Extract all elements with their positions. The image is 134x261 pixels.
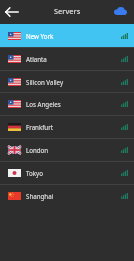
staticText: Silicon Valley xyxy=(26,78,64,86)
button[interactable]: Los Angeles xyxy=(0,92,134,115)
staticText: Los Angeles xyxy=(26,100,61,108)
button[interactable]: London xyxy=(0,138,134,161)
staticText: Frankfurt xyxy=(26,123,53,131)
button[interactable]: Atlanta xyxy=(0,47,134,70)
staticText: Shanghai xyxy=(26,192,54,200)
staticText: Atlanta xyxy=(26,55,47,63)
button[interactable]: New York xyxy=(0,24,134,47)
button[interactable]: Shanghai xyxy=(0,184,134,207)
staticText: New York xyxy=(26,32,54,40)
button[interactable]: Silicon Valley xyxy=(0,70,134,93)
staticText: Servers xyxy=(54,6,81,16)
button[interactable]: Tokyo xyxy=(0,161,134,184)
button[interactable]: Frankfurt xyxy=(0,115,134,138)
staticText: London xyxy=(26,146,49,154)
button[interactable]: Cloud xyxy=(114,7,127,15)
button[interactable]: Back xyxy=(5,8,19,16)
staticText: Tokyo xyxy=(26,169,43,177)
